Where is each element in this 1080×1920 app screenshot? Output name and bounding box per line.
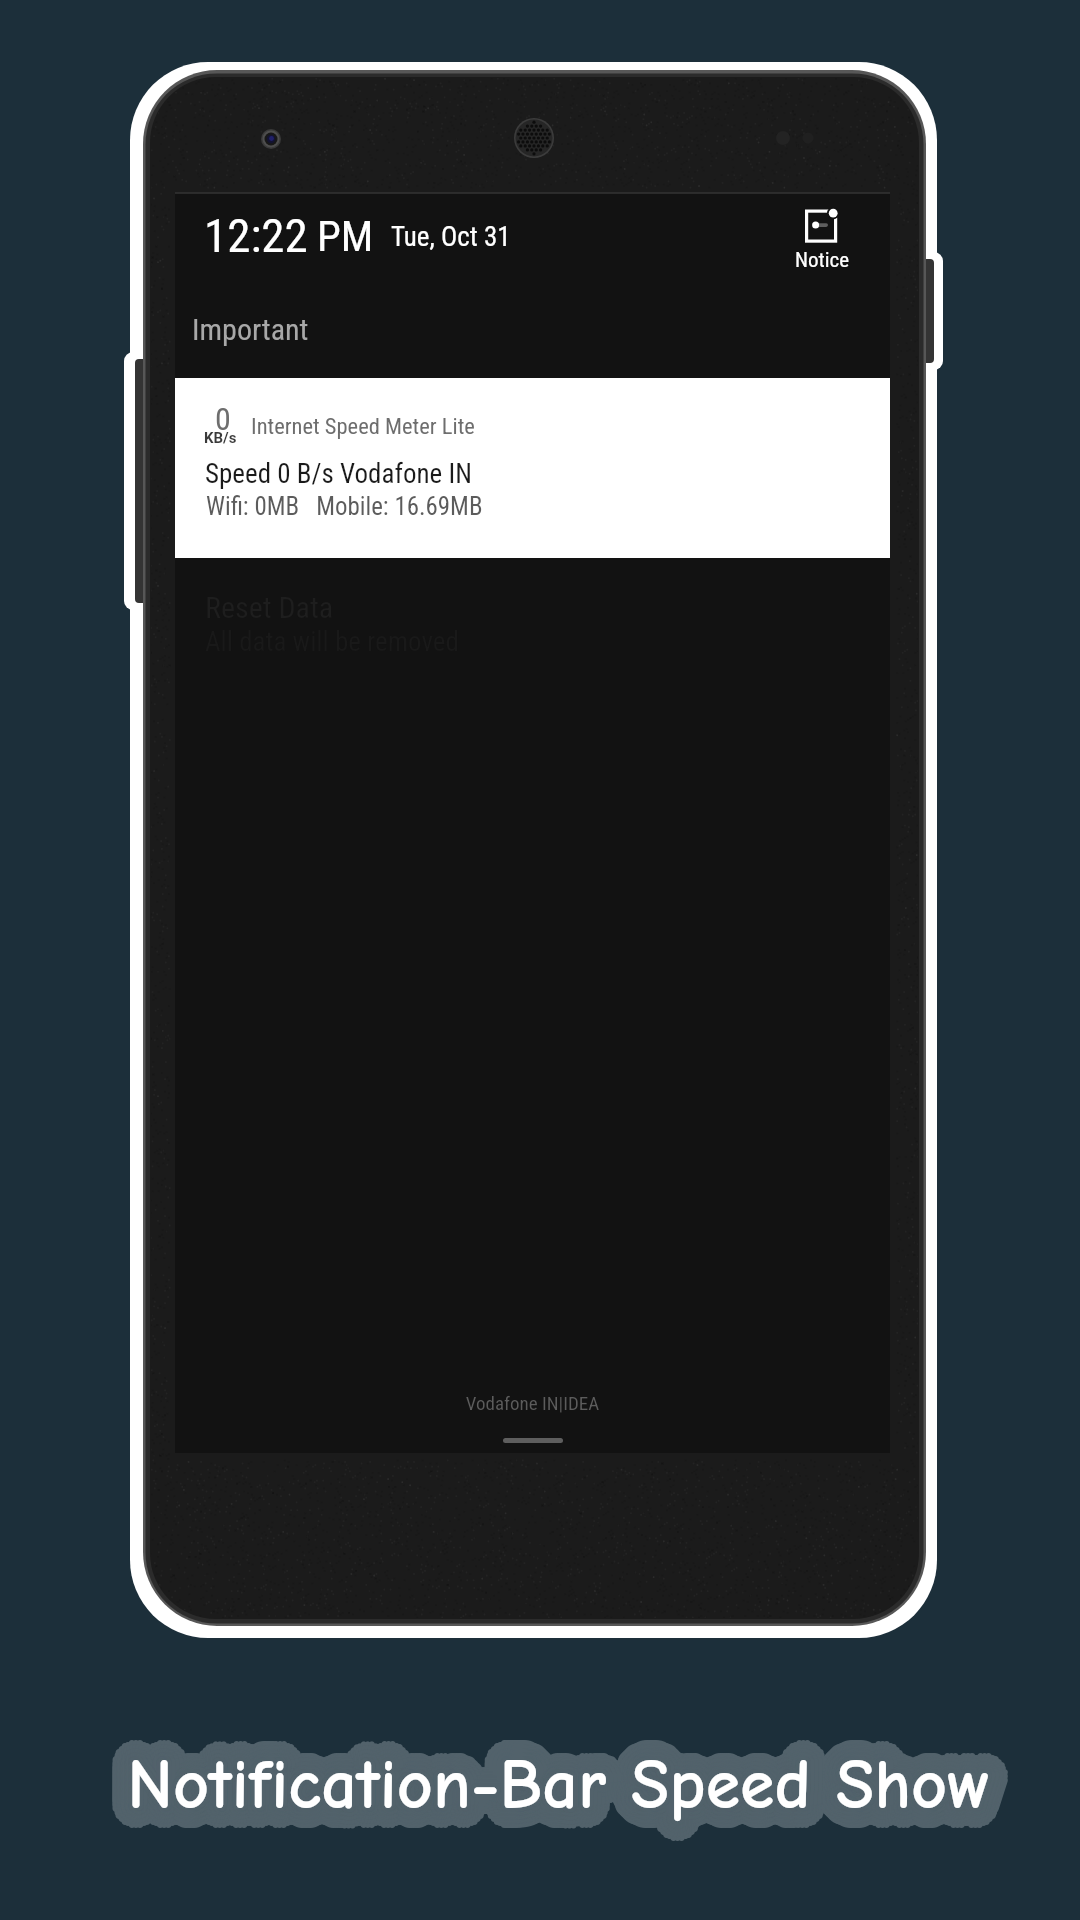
staticText: Notification-Bar Speed Show xyxy=(127,1725,991,1806)
staticText: Notification-Bar Speed Show xyxy=(123,1765,987,1846)
staticText: Notification-Bar Speed Show xyxy=(125,1757,989,1838)
staticText: Notification-Bar Speed Show xyxy=(136,1732,1000,1813)
staticText: Notification-Bar Speed Show xyxy=(120,1735,984,1816)
staticText: Wifi: 0MB Mobile: 16.69MB xyxy=(206,492,483,521)
staticText: Notification-Bar Speed Show xyxy=(121,1751,985,1832)
staticText: Notification-Bar Speed Show xyxy=(135,1763,999,1844)
staticText: Tue, Oct 31 xyxy=(391,221,511,253)
staticText: Notification-Bar Speed Show xyxy=(135,1737,999,1818)
staticText: Notification-Bar Speed Show xyxy=(121,1760,985,1841)
staticText: Notification-Bar Speed Show xyxy=(133,1739,997,1820)
staticText: Notification-Bar Speed Show xyxy=(139,1747,1003,1828)
staticText: Notification-Bar Speed Show xyxy=(123,1725,987,1806)
staticText: Notification-Bar Speed Show xyxy=(127,1749,991,1830)
staticText: Notification-Bar Speed Show xyxy=(124,1742,988,1823)
staticText: Notification-Bar Speed Show xyxy=(119,1727,983,1808)
staticText: Notification-Bar Speed Show xyxy=(138,1728,1002,1809)
staticText: Notification-Bar Speed Show xyxy=(126,1749,990,1830)
staticText: Notification-Bar Speed Show xyxy=(124,1748,988,1829)
staticText: Notification-Bar Speed Show xyxy=(117,1738,981,1819)
staticText: Notification-Bar Speed Show xyxy=(143,1748,1007,1829)
staticText: Notification-Bar Speed Show xyxy=(139,1743,1003,1824)
staticText: Notification-Bar Speed Show xyxy=(116,1750,980,1831)
staticText: Notification-Bar Speed Show xyxy=(113,1731,977,1812)
staticText: Notification-Bar Speed Show xyxy=(127,1733,991,1814)
staticText: Notification-Bar Speed Show xyxy=(109,1753,973,1834)
staticText: Notification-Bar Speed Show xyxy=(129,1749,993,1830)
staticText: Notification-Bar Speed Show xyxy=(124,1738,988,1819)
staticText: Notification-Bar Speed Show xyxy=(125,1737,989,1818)
button[interactable]: Notice xyxy=(791,201,863,273)
staticText: Notification-Bar Speed Show xyxy=(124,1743,988,1824)
staticText: Notification-Bar Speed Show xyxy=(142,1739,1006,1820)
staticText: Notification-Bar Speed Show xyxy=(144,1756,1008,1837)
staticText: Notification-Bar Speed Show xyxy=(109,1737,973,1818)
staticText: Notification-Bar Speed Show xyxy=(140,1736,1004,1817)
staticText: Notification-Bar Speed Show xyxy=(130,1761,994,1842)
staticText: Notification-Bar Speed Show xyxy=(116,1740,980,1821)
staticText: Notification-Bar Speed Show xyxy=(126,1741,990,1822)
staticText: Notification-Bar Speed Show xyxy=(107,1741,971,1822)
staticText: Notification-Bar Speed Show xyxy=(120,1749,984,1830)
staticText: Notification-Bar Speed Show xyxy=(132,1756,996,1837)
staticText: Notification-Bar Speed Show xyxy=(120,1742,984,1823)
staticText: Notification-Bar Speed Show xyxy=(125,1733,989,1814)
staticText: Notification-Bar Speed Show xyxy=(131,1745,995,1826)
staticText: Notification-Bar Speed Show xyxy=(130,1742,994,1823)
staticText: Notification-Bar Speed Show xyxy=(139,1745,1003,1826)
staticText: Reset Data xyxy=(205,590,334,625)
staticText: Notification-Bar Speed Show xyxy=(130,1729,994,1810)
staticText: Notification-Bar Speed Show xyxy=(116,1756,980,1837)
staticText: Notification-Bar Speed Show xyxy=(134,1741,998,1822)
staticText: Notification-Bar Speed Show xyxy=(147,1745,1011,1826)
staticText: Important xyxy=(192,312,309,347)
staticText: Notification-Bar Speed Show xyxy=(138,1750,1002,1831)
staticText: Notification-Bar Speed Show xyxy=(123,1747,987,1828)
staticText: Notification-Bar Speed Show xyxy=(143,1742,1007,1823)
staticText: Notification-Bar Speed Show xyxy=(120,1748,984,1829)
staticText: Notification-Bar Speed Show xyxy=(141,1731,1005,1812)
staticText: Notification-Bar Speed Show xyxy=(143,1745,1007,1826)
staticText: Notification-Bar Speed Show xyxy=(135,1727,999,1808)
staticText: Notification-Bar Speed Show xyxy=(135,1743,999,1824)
staticText: Notification-Bar Speed Show xyxy=(134,1742,998,1823)
staticText: Notification-Bar Speed Show xyxy=(127,1765,991,1846)
staticText: Notification-Bar Speed Show xyxy=(134,1735,998,1816)
staticText: Notification-Bar Speed Show xyxy=(129,1757,993,1838)
staticText: Notification-Bar Speed Show xyxy=(123,1744,987,1825)
staticText: Notification-Bar Speed Show xyxy=(131,1743,995,1824)
staticText: Notification-Bar Speed Show xyxy=(119,1763,983,1844)
staticText: Notification-Bar Speed Show xyxy=(116,1762,980,1843)
staticText: Notification-Bar Speed Show xyxy=(127,1757,991,1838)
staticText: Notification-Bar Speed Show xyxy=(107,1745,971,1826)
staticText: Notification-Bar Speed Show xyxy=(125,1748,989,1829)
staticText: Notification-Bar Speed Show xyxy=(133,1730,997,1811)
staticText: Notification-Bar Speed Show xyxy=(125,1749,989,1830)
staticText: Vodafone IN|IDEA xyxy=(175,1392,890,1414)
staticText: Notification-Bar Speed Show xyxy=(138,1762,1002,1843)
staticText: 0 xyxy=(215,400,231,438)
staticText: Speed 0 B/s Vodafone IN xyxy=(205,458,472,490)
staticText: Notification-Bar Speed Show xyxy=(127,1745,991,1826)
staticText: Notification-Bar Speed Show xyxy=(147,1741,1011,1822)
staticText: Notification-Bar Speed Show xyxy=(129,1733,993,1814)
staticText: Notification-Bar Speed Show xyxy=(123,1746,987,1827)
staticText: Notification-Bar Speed Show xyxy=(138,1756,1002,1837)
staticText: Notification-Bar Speed Show xyxy=(111,1745,975,1826)
button[interactable]: 0 xyxy=(175,378,890,558)
staticText: Notification-Bar Speed Show xyxy=(135,1747,999,1828)
staticText: Notification-Bar Speed Show xyxy=(118,1732,982,1813)
staticText: Notification-Bar Speed Show xyxy=(119,1745,983,1826)
staticText: Notification-Bar Speed Show xyxy=(145,1737,1009,1818)
staticText: Notification-Bar Speed Show xyxy=(121,1739,985,1820)
staticText: Notification-Bar Speed Show xyxy=(135,1753,999,1834)
staticText: Notification-Bar Speed Show xyxy=(127,1741,991,1822)
staticText: Notification-Bar Speed Show xyxy=(107,1749,971,1830)
staticText: Notification-Bar Speed Show xyxy=(119,1737,983,1818)
staticText: Notification-Bar Speed Show xyxy=(134,1749,998,1830)
staticText: Notification-Bar Speed Show xyxy=(131,1765,995,1846)
staticText: 12:22 xyxy=(204,208,308,263)
staticText: Notification-Bar Speed Show xyxy=(141,1759,1005,1840)
